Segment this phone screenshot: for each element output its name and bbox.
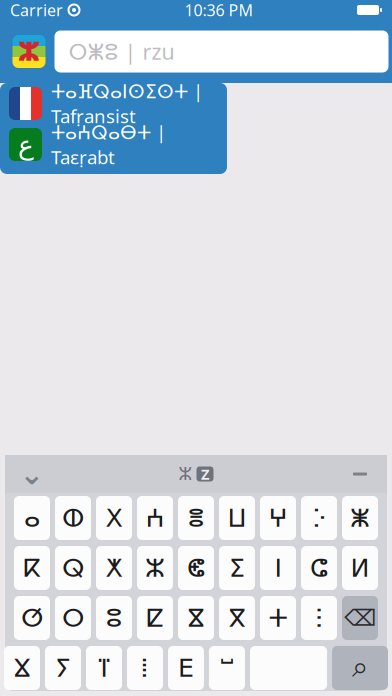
- button[interactable]: ⴴ: [4, 646, 40, 690]
- staticText: ⵯ: [220, 654, 233, 682]
- staticText: ⴾ: [313, 504, 325, 532]
- staticText: ⵜⴰⴼⵕⴰⵏⵙⵉⵙⵜ | Tafṛansist: [51, 79, 203, 128]
- button[interactable]: ⵍ: [342, 546, 378, 590]
- staticText: ⵇ: [146, 604, 163, 632]
- button[interactable]: ⵇ: [137, 596, 173, 640]
- staticText: ⵡ: [227, 504, 246, 532]
- button[interactable]: ⵯ: [209, 646, 245, 690]
- staticText: Carrier: [10, 0, 63, 21]
- button[interactable]: ⵔ: [55, 596, 91, 640]
- button[interactable]: ⵢ: [45, 646, 81, 690]
- staticText: ⵂ: [141, 654, 149, 682]
- staticText: ⵄ: [145, 504, 164, 532]
- button[interactable]: ⵗ: [301, 596, 337, 640]
- staticText: Z: [201, 464, 209, 484]
- staticText: ⴵ: [188, 604, 204, 632]
- staticText: ⵥ: [350, 504, 370, 532]
- staticText: ⌄: [19, 457, 44, 491]
- button[interactable]: ⴾ: [301, 496, 337, 540]
- staticText: 10:36 PM: [184, 0, 253, 21]
- button[interactable]: ⵂ: [127, 646, 163, 690]
- button[interactable]: ⴶ: [86, 646, 122, 690]
- button[interactable]: ⵣ: [137, 546, 173, 590]
- button[interactable]: ⵛ: [301, 546, 337, 590]
- staticText: ⵣ: [145, 554, 165, 582]
- button[interactable]: ⴰ: [14, 496, 50, 540]
- button[interactable]: ⵚ: [14, 596, 50, 640]
- staticText: ⵣ: [178, 464, 192, 484]
- staticText: ⵓ: [106, 604, 122, 632]
- button[interactable]: ⴵ: [178, 596, 214, 640]
- button[interactable]: ⵀ: [55, 496, 91, 540]
- button[interactable]: ⴻ: [178, 496, 214, 540]
- button[interactable]: Minimize keyboard: [339, 458, 381, 490]
- button[interactable]: ع: [0, 124, 227, 165]
- staticText: ⵚ: [21, 604, 43, 632]
- staticText: ⵔ: [62, 604, 84, 632]
- button[interactable]: ⵞ: [178, 546, 214, 590]
- staticText: ⌫: [344, 605, 376, 631]
- button[interactable]: ⵅ: [96, 546, 132, 590]
- staticText: ⵝ: [105, 504, 122, 532]
- staticText: ⌕: [352, 654, 368, 682]
- staticText: ⵖ: [268, 504, 287, 532]
- staticText: ⵜⴰⵄⵕⴰⴱⵜ | Taɛṛabt: [51, 120, 166, 169]
- button[interactable]: ⵖ: [260, 496, 296, 540]
- button[interactable]: Search: [332, 646, 388, 690]
- staticText: ⴽ: [23, 554, 40, 582]
- staticText: ⵅ: [105, 554, 122, 582]
- button[interactable]: ⴽ: [14, 546, 50, 590]
- button[interactable]: ⵥ: [342, 496, 378, 540]
- staticText: ⵛ: [310, 554, 328, 582]
- staticText: ⴰ: [24, 504, 40, 532]
- button[interactable]: ⵝ: [96, 496, 132, 540]
- button[interactable]: Delete: [342, 596, 378, 640]
- button[interactable]: ⵡ: [219, 496, 255, 540]
- button[interactable]: ⴳ: [219, 596, 255, 640]
- staticText: ⴳ: [228, 604, 245, 632]
- staticText: ⵢ: [55, 654, 71, 682]
- staticText: ع: [17, 129, 33, 160]
- staticText: ⵍ: [350, 554, 369, 582]
- staticText: ⵗ: [315, 604, 323, 632]
- button[interactable]: ⴹ: [168, 646, 204, 690]
- staticText: ⵕ: [62, 554, 84, 582]
- staticText: ⵀ: [62, 504, 84, 532]
- staticText: ⴶ: [97, 654, 111, 682]
- staticText: ⵞ: [187, 554, 205, 582]
- staticText: ⴻ: [187, 504, 204, 532]
- button[interactable]: ⵜⴰⴼⵕⴰⵏⵙⵉⵙⵜ | Tafṛansist: [0, 83, 227, 124]
- staticText: ⵔⵥⵓ | rzu: [68, 37, 174, 66]
- staticText: ⵏ: [274, 554, 281, 582]
- button[interactable]: ⵔⵥⵓ | rzu: [54, 30, 388, 72]
- staticText: ⵜ: [268, 604, 287, 632]
- button[interactable]: ⵉ: [219, 546, 255, 590]
- button[interactable]: ⵏ: [260, 546, 296, 590]
- button[interactable]: Hide keyboard: [11, 458, 53, 490]
- button[interactable]: Switch script: [156, 458, 236, 490]
- button[interactable]: ⵜ: [260, 596, 296, 640]
- staticText: ⵉ: [229, 554, 245, 582]
- staticText: ⴴ: [13, 654, 30, 682]
- button[interactable]: ⵕ: [55, 546, 91, 590]
- staticText: ⴹ: [178, 654, 194, 682]
- staticText: ⵣ: [17, 36, 40, 67]
- button[interactable]: ⵓ: [96, 596, 132, 640]
- button[interactable]: ⵄ: [137, 496, 173, 540]
